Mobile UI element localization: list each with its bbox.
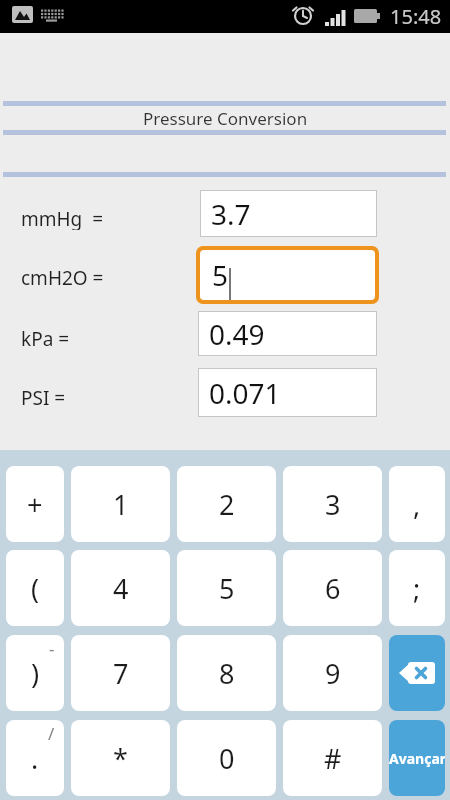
button[interactable]: 5 — [196, 246, 379, 304]
button[interactable]: 3.7 — [200, 190, 377, 237]
staticText: 7 — [113, 655, 129, 692]
staticText: 3 — [325, 486, 341, 523]
button[interactable]: Avançar — [389, 720, 445, 796]
staticText: Pressure Conversion — [143, 107, 308, 130]
button[interactable]: . — [6, 720, 64, 796]
staticText: 2 — [219, 486, 235, 523]
staticText: 5 — [212, 256, 229, 294]
button[interactable]: # — [283, 720, 382, 796]
button[interactable]: 6 — [283, 550, 382, 626]
staticText: / — [48, 722, 55, 745]
staticText: 3.7 — [211, 195, 251, 233]
staticText: 5 — [219, 570, 235, 607]
staticText: mmHg = — [21, 206, 104, 230]
staticText: cmH2O = — [21, 265, 104, 289]
button[interactable]: , — [389, 466, 445, 542]
button[interactable]: 8 — [177, 635, 276, 711]
staticText: 1 — [113, 486, 129, 523]
staticText: , — [413, 486, 421, 523]
button[interactable]: ( — [6, 550, 64, 626]
button[interactable]: 7 — [71, 635, 170, 711]
button[interactable]: 0.071 — [198, 368, 377, 417]
staticText: 9 — [325, 655, 341, 692]
button[interactable]: 4 — [71, 550, 170, 626]
staticText: 0.49 — [209, 315, 265, 353]
staticText: + — [27, 486, 43, 523]
staticText: ; — [413, 570, 421, 607]
button[interactable]: 3 — [283, 466, 382, 542]
button[interactable]: 1 — [71, 466, 170, 542]
staticText: . — [31, 740, 39, 777]
staticText: 6 — [325, 570, 341, 607]
button[interactable] — [389, 635, 445, 711]
staticText: ) — [31, 655, 40, 692]
button[interactable]: 0 — [177, 720, 276, 796]
button[interactable]: 2 — [177, 466, 276, 542]
staticText: 15:48 — [390, 3, 442, 30]
button[interactable]: ) — [6, 635, 64, 711]
button[interactable]: 9 — [283, 635, 382, 711]
staticText: 8 — [219, 655, 235, 692]
button[interactable]: + — [6, 466, 64, 542]
staticText: PSI = — [21, 385, 66, 409]
staticText: 4 — [113, 570, 129, 607]
staticText: * — [113, 740, 128, 777]
staticText: ( — [31, 570, 40, 607]
staticText: - — [49, 637, 55, 660]
button[interactable]: ; — [389, 550, 445, 626]
button[interactable]: * — [71, 720, 170, 796]
staticText: kPa = — [21, 326, 70, 350]
button[interactable]: 5 — [177, 550, 276, 626]
staticText: # — [324, 740, 342, 777]
staticText: 0.071 — [209, 374, 281, 412]
button[interactable]: 0.49 — [198, 311, 377, 356]
staticText: 0 — [219, 740, 235, 777]
staticText: Avançar — [389, 749, 445, 768]
